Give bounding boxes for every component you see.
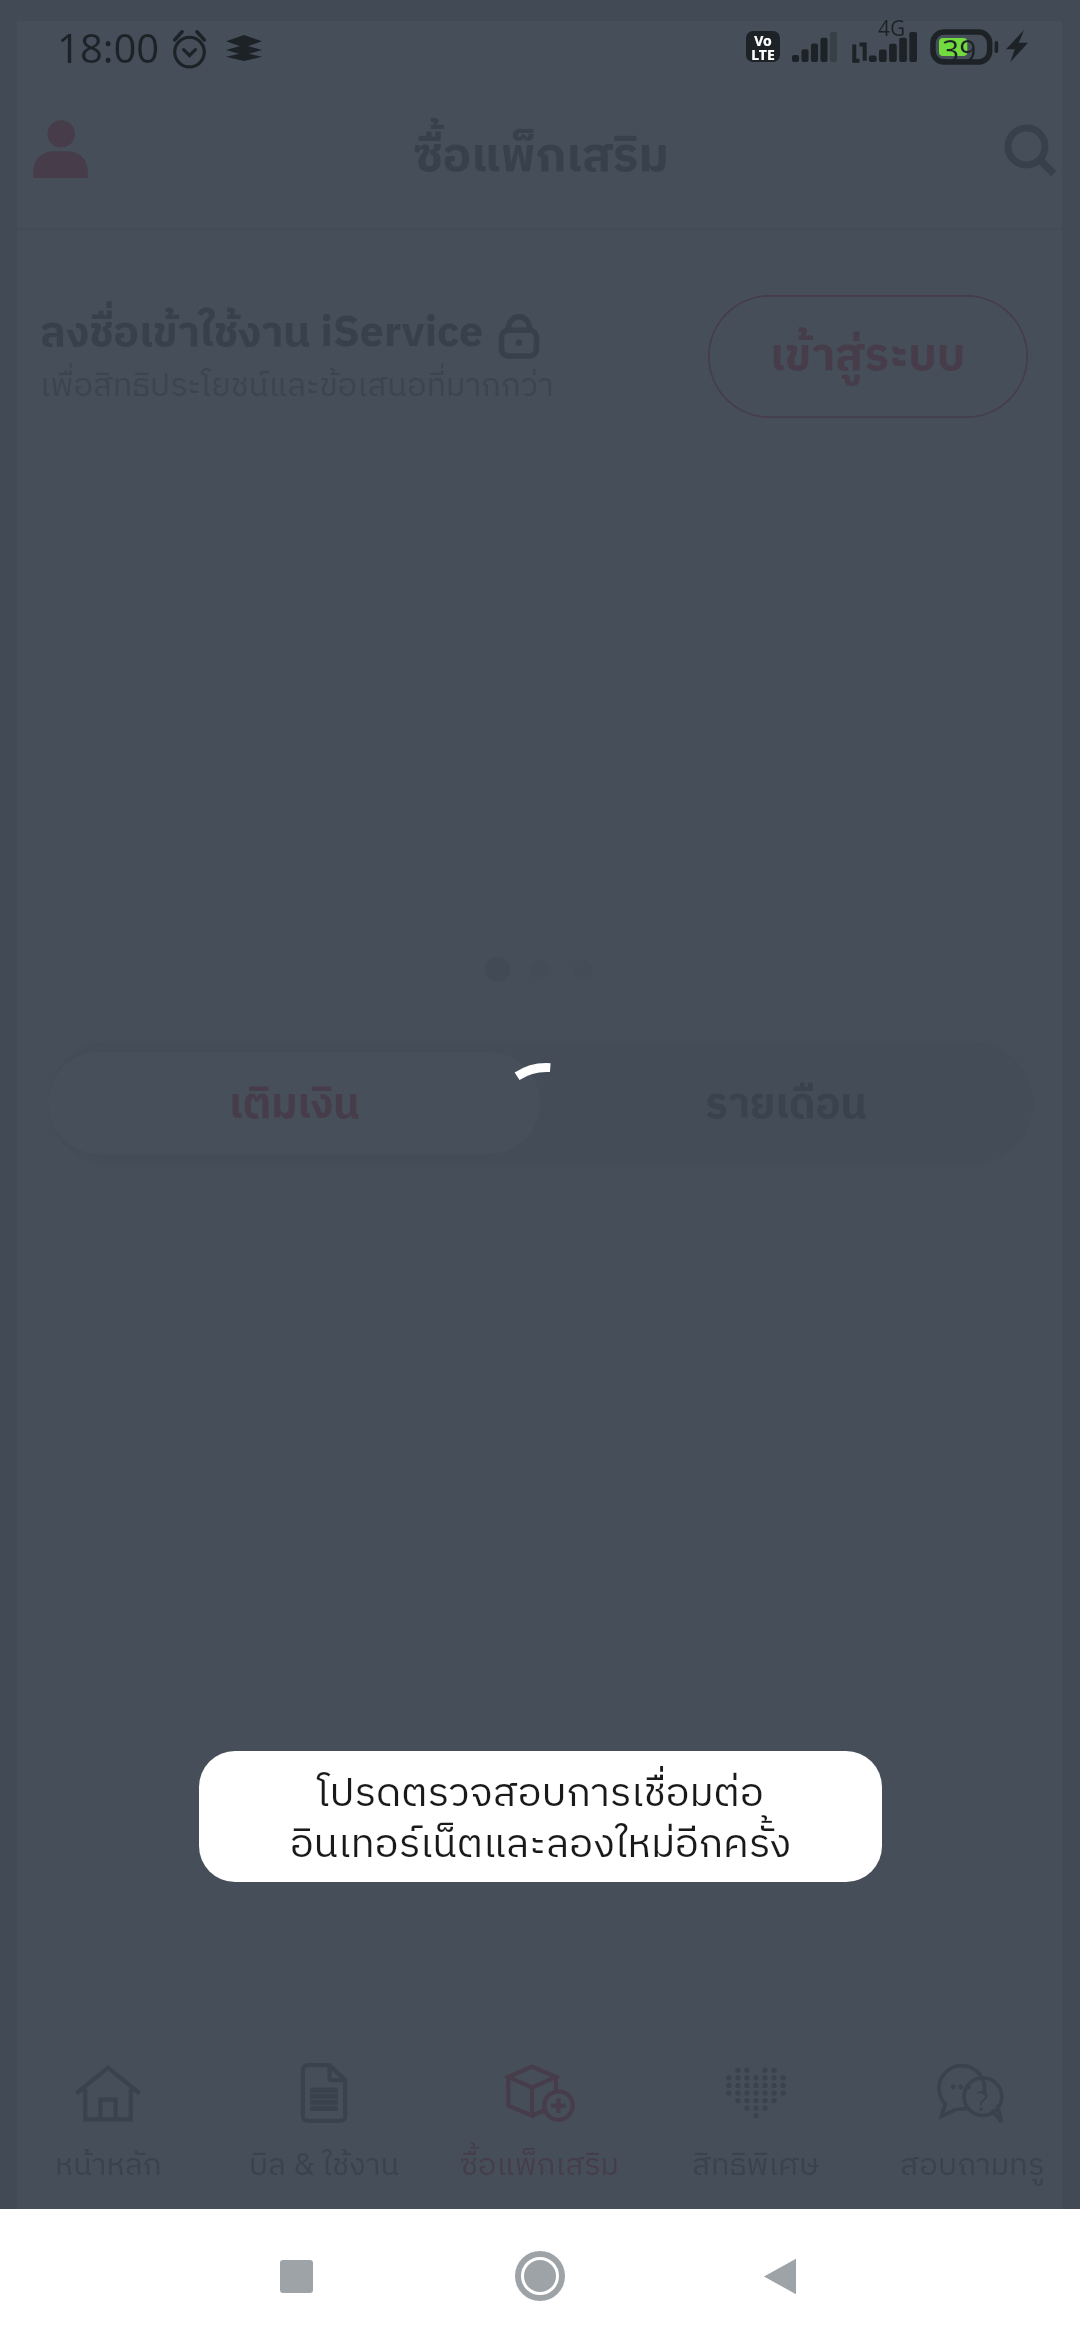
staticText: รายเดือน: [705, 1071, 868, 1140]
button[interactable]: Recents: [246, 2226, 346, 2326]
button[interactable]: Search: [988, 108, 1076, 196]
button[interactable]: รายเดือน: [540, 1041, 1033, 1165]
staticText: ซื้อแพ็กเสริม: [460, 2140, 620, 2191]
staticText: สอบถามทรู: [900, 2140, 1045, 2191]
staticText: บิล & ใช้งาน: [249, 2140, 400, 2191]
button[interactable]: เข้าสู่ระบบ: [708, 295, 1028, 418]
staticText: ?: [976, 2081, 989, 2119]
staticText: 18:00: [57, 20, 160, 74]
button[interactable]: Home: [490, 2226, 590, 2326]
staticText: โปรดตรวจสอบการเชื่อมต่อ อินเทอร์เน็ตและล…: [199, 1761, 882, 1879]
staticText: ลงชื่อเข้าใช้งาน iService: [40, 298, 484, 369]
staticText: เติมเงิน: [229, 1071, 360, 1140]
staticText: สิทธิพิเศษ: [692, 2140, 820, 2191]
staticText: 4G: [878, 14, 906, 43]
staticText: เข้าสู่ระบบ: [770, 319, 966, 395]
staticText: Vo LTE: [751, 31, 775, 62]
staticText: 39: [942, 30, 977, 60]
staticText: ซื้อแพ็กเสริม: [414, 117, 669, 196]
staticText: หน้าหลัก: [55, 2140, 162, 2191]
button[interactable]: ซื้อแพ็กเสริม: [432, 2030, 648, 2209]
button[interactable]: เติมเงิน: [48, 1052, 540, 1154]
button[interactable]: Profile: [16, 105, 104, 193]
button[interactable]: Back: [730, 2226, 830, 2326]
